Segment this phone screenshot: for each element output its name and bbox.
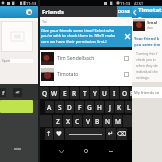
staticText: abou (147, 26, 154, 30)
staticText: Give your friends some time! Select who … (41, 28, 121, 45)
button[interactable]: P (130, 87, 132, 99)
staticText: Q (42, 89, 48, 98)
staticText: B (95, 117, 100, 126)
button[interactable]: ⌫ (117, 128, 127, 140)
staticText: T (83, 89, 87, 98)
button[interactable]: K (115, 101, 124, 113)
button[interactable]: Timotato (40, 66, 132, 82)
staticText: S (58, 103, 62, 112)
staticText: AT&T (134, 1, 144, 6)
staticText: W (51, 89, 58, 98)
button[interactable]: DONE (117, 6, 132, 17)
button[interactable]: Tim Sendelbach (40, 50, 132, 66)
button[interactable]: N (103, 115, 112, 127)
button[interactable]: Dismiss (122, 26, 132, 47)
button[interactable]: Space (65, 128, 105, 140)
button[interactable]: Back (57, 147, 65, 155)
staticText: D (67, 103, 72, 112)
button[interactable]: B (93, 115, 102, 127)
button[interactable]: Z (53, 115, 62, 127)
button[interactable]: O (120, 87, 129, 99)
staticText: ⌫ (117, 130, 127, 138)
staticText: ↑ (46, 130, 52, 138)
staticText: Y (93, 89, 97, 98)
button[interactable]: M (113, 115, 122, 127)
staticText: P (130, 89, 132, 98)
button[interactable]: My friends ca (132, 87, 162, 98)
button[interactable]: H (95, 101, 104, 113)
staticText: Timotato (138, 6, 162, 18)
staticText: DONE (118, 9, 131, 15)
button[interactable]: V (83, 115, 92, 127)
staticText: V (86, 117, 90, 126)
staticText: I (113, 89, 116, 98)
button[interactable]: Twitter (13, 88, 22, 97)
button[interactable]: X (63, 115, 72, 127)
button[interactable]: ↵ (106, 128, 116, 140)
staticText: f (2, 89, 5, 97)
staticText: To: (42, 19, 48, 24)
button[interactable]: W (50, 87, 59, 99)
button[interactable]: J (105, 101, 114, 113)
button[interactable]: R (70, 87, 79, 99)
button[interactable]: Y (90, 87, 99, 99)
button[interactable]: L (125, 101, 132, 113)
staticText: O (122, 89, 128, 98)
staticText: A (47, 103, 52, 112)
button[interactable]: U (100, 87, 109, 99)
button[interactable]: ↑ (45, 128, 53, 140)
button[interactable]: ♥ (54, 128, 64, 140)
staticText: L (127, 103, 131, 112)
button[interactable]: A (45, 101, 54, 113)
staticText: Timotato (57, 71, 79, 78)
button[interactable]: E (60, 87, 69, 99)
staticText: Smal (147, 20, 158, 26)
staticText: 11:13 (120, 1, 131, 6)
staticText: U (102, 89, 107, 98)
staticText: Z (56, 117, 60, 126)
staticText: H (97, 103, 102, 112)
button[interactable]: F (75, 101, 84, 113)
staticText: Tim Sendelbach (57, 55, 95, 62)
button[interactable]: G (85, 101, 94, 113)
button[interactable]: S (55, 101, 64, 113)
staticText: N (105, 117, 111, 126)
staticText: E (63, 89, 67, 98)
button[interactable]: C (73, 115, 82, 127)
staticText: K (117, 103, 122, 112)
button[interactable]: I (110, 87, 119, 99)
staticText: My friends ca (134, 90, 160, 95)
staticText: C (75, 117, 80, 126)
staticText: R (72, 89, 77, 98)
other: Profile (26, 9, 32, 15)
staticText: Sponsored (2, 59, 19, 63)
staticText: ♥ (56, 130, 62, 138)
button[interactable]: Profile (0, 6, 38, 18)
button[interactable]: D (65, 101, 74, 113)
button[interactable]: Timotato (132, 6, 162, 18)
staticText: F (78, 103, 82, 112)
button[interactable]: T (80, 87, 89, 99)
staticText: M (115, 117, 121, 126)
button[interactable]: Facebook (0, 88, 6, 97)
button[interactable]: Home (82, 147, 90, 155)
staticText: ↵ (108, 130, 114, 138)
staticText: Your friend k you same tim (134, 36, 161, 47)
button[interactable]: Recents (107, 147, 115, 155)
staticText: X (66, 117, 70, 126)
staticText: G (87, 103, 92, 112)
button[interactable]: Q (40, 87, 49, 99)
button[interactable] (0, 100, 33, 113)
staticText: J (109, 103, 111, 112)
staticText: 11:13 (26, 1, 37, 6)
staticText: Turning this f check you in when they do… (136, 51, 159, 80)
staticText: Friends (42, 8, 65, 16)
